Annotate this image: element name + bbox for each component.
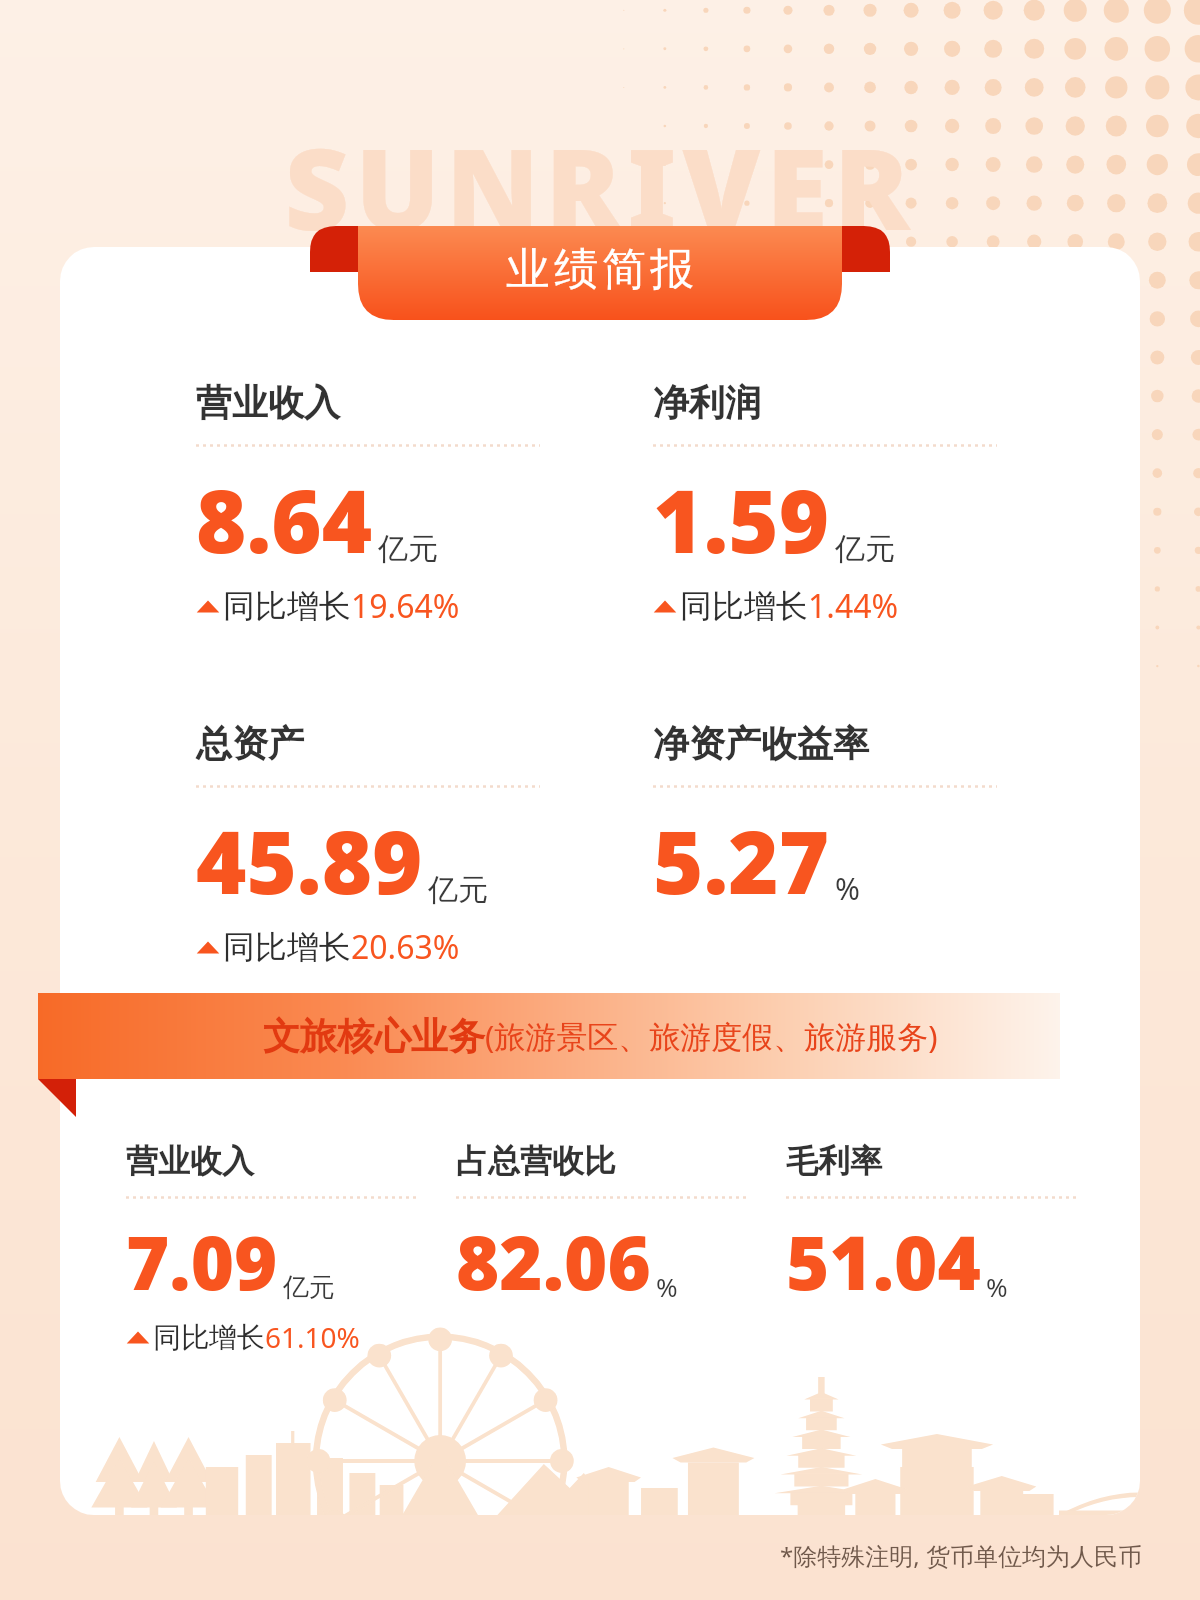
staticText: 61.10% xyxy=(265,1318,360,1356)
staticText: 1.44% xyxy=(808,584,899,628)
staticText: 亿元 xyxy=(378,530,438,568)
staticText: 同比增长 xyxy=(223,927,351,967)
staticText: 亿元 xyxy=(835,530,895,568)
staticText: *除特殊注明, 货币单位均为人民币 xyxy=(780,1539,1142,1572)
staticText: % xyxy=(835,868,860,909)
staticText: % xyxy=(986,1269,1008,1304)
button[interactable]: 文旅核心业务 xyxy=(0,1013,1200,1060)
staticText: 51.04 xyxy=(786,1211,981,1312)
staticText: 1.59 xyxy=(653,461,830,578)
staticText: 20.63% xyxy=(351,925,460,969)
staticText: % xyxy=(656,1269,678,1304)
staticText: 营业收入 xyxy=(196,380,340,425)
staticText: 同比增长 xyxy=(223,586,351,626)
staticText: 营业收入 xyxy=(126,1141,254,1181)
button[interactable]: 业绩简报 xyxy=(504,242,696,297)
staticText: 文旅核心业务 xyxy=(263,1013,485,1060)
staticText: 45.89 xyxy=(196,802,423,919)
button[interactable]: 净资产收益率 xyxy=(653,721,1053,919)
button[interactable]: 占总营收比 xyxy=(456,1141,786,1312)
staticText: SUNRIVER xyxy=(0,110,1200,263)
button[interactable]: 总资产 xyxy=(196,721,653,969)
staticText: (旅游景区、旅游度假、旅游服务) xyxy=(485,1015,938,1057)
staticText: 19.64% xyxy=(351,584,460,628)
staticText: 毛利率 xyxy=(786,1141,882,1181)
button[interactable]: 净利润 xyxy=(653,380,1053,628)
staticText: 总资产 xyxy=(196,721,304,766)
staticText: 8.64 xyxy=(196,461,373,578)
staticText: 亿元 xyxy=(428,871,488,909)
button[interactable]: 毛利率 xyxy=(786,1141,1086,1312)
staticText: 5.27 xyxy=(653,802,830,919)
staticText: 同比增长 xyxy=(153,1320,265,1355)
staticText: 7.09 xyxy=(126,1211,278,1312)
staticText: 净资产收益率 xyxy=(653,721,869,766)
staticText: 占总营收比 xyxy=(456,1141,616,1181)
button[interactable]: 营业收入 xyxy=(196,380,653,628)
button[interactable]: 营业收入 xyxy=(126,1141,456,1356)
staticText: 亿元 xyxy=(283,1271,335,1304)
staticText: 82.06 xyxy=(456,1211,651,1312)
staticText: 同比增长 xyxy=(680,586,808,626)
staticText: 净利润 xyxy=(653,380,761,425)
